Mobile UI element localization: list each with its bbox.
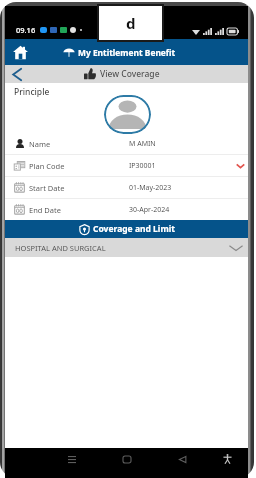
button[interactable]: Accessibility <box>219 450 235 467</box>
staticText: 01-May-2023 <box>129 183 172 193</box>
button[interactable]: Back <box>166 451 198 468</box>
button[interactable]: Home <box>111 451 143 468</box>
staticText: Name <box>29 139 51 149</box>
staticText: 09.16 <box>16 25 36 35</box>
button[interactable]: HOSPITAL AND SURGICAL <box>5 238 248 257</box>
staticText: End Date <box>29 205 61 215</box>
staticText: HOSPITAL AND SURGICAL <box>15 243 106 253</box>
staticText: Principle <box>14 86 50 98</box>
staticText: 30-Apr-2024 <box>129 205 170 215</box>
staticText: IP30001 <box>129 161 156 171</box>
staticText: Coverage and Limit <box>93 223 175 235</box>
button[interactable]: Back <box>9 66 25 82</box>
staticText: View Coverage <box>100 68 160 80</box>
button[interactable]: Start Date <box>5 177 248 198</box>
staticText: M AMIN <box>129 139 156 149</box>
staticText: Start Date <box>29 183 65 193</box>
button[interactable]: Recents <box>56 451 88 468</box>
button[interactable]: Coverage and Limit <box>5 220 248 238</box>
staticText: d <box>126 13 136 33</box>
staticText: Plan Code <box>29 161 65 171</box>
button[interactable]: Plan Code <box>5 155 248 176</box>
button[interactable]: Home <box>9 41 31 63</box>
staticText: My Entitlement Benefit <box>78 47 176 58</box>
button[interactable]: Name <box>5 133 248 154</box>
button[interactable]: End Date <box>5 199 248 220</box>
